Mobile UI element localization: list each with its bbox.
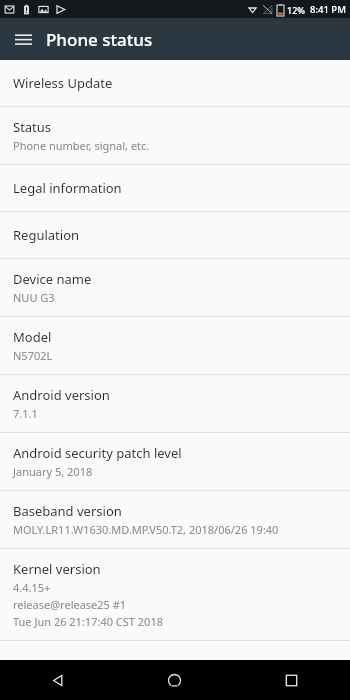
staticText: 8:41 PM — [310, 3, 346, 16]
staticText: NUU G3 — [13, 290, 55, 305]
staticText: Model — [13, 328, 52, 346]
button[interactable]: Back — [0, 660, 116, 700]
button[interactable]: Regulation — [0, 212, 350, 258]
button[interactable]: Android security patch level — [0, 433, 350, 490]
staticText: Phone status — [46, 28, 153, 51]
button[interactable]: Android version — [0, 375, 350, 432]
staticText: MOLY.LR11.W1630.MD.MP.V50.T2, 2018/06/26… — [13, 522, 279, 537]
staticText: January 5, 2018 — [13, 464, 93, 479]
staticText: Device name — [13, 270, 92, 288]
button[interactable]: Model — [0, 317, 350, 374]
button[interactable]: Status — [0, 107, 350, 164]
button[interactable]: Kernel version — [0, 549, 350, 640]
button[interactable]: Legal information — [0, 165, 350, 211]
staticText: 12% — [287, 4, 305, 16]
staticText: 7.1.1 — [13, 406, 38, 421]
staticText: Status — [13, 118, 52, 136]
staticText: N5702L — [13, 348, 53, 363]
button[interactable]: Open navigation menu — [8, 24, 38, 54]
staticText: Android version — [13, 386, 110, 404]
staticText: Android security patch level — [13, 444, 182, 462]
button[interactable]: Baseband version — [0, 491, 350, 548]
staticText: Kernel version — [13, 560, 101, 578]
staticText: 4.4.15+ — [13, 580, 51, 595]
staticText: Wireless Update — [13, 74, 113, 92]
staticText: Phone number, signal, etc. — [13, 138, 150, 153]
button[interactable]: Home — [116, 660, 233, 700]
staticText: release@release25 #1 — [13, 597, 127, 612]
staticText: Legal information — [13, 179, 122, 197]
button[interactable]: Recent apps — [233, 660, 350, 700]
staticText: Regulation — [13, 226, 80, 244]
button[interactable]: Wireless Update — [0, 60, 350, 106]
button[interactable]: Device name — [0, 259, 350, 316]
staticText: Tue Jun 26 21:17:40 CST 2018 — [13, 614, 163, 629]
staticText: Baseband version — [13, 502, 122, 520]
